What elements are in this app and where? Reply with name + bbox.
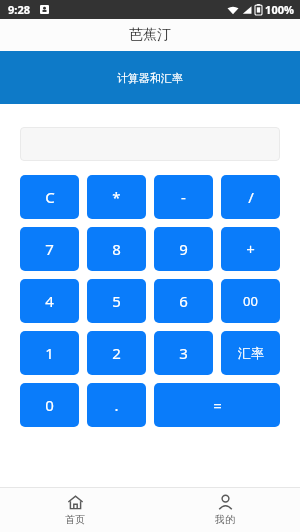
staticText: + [246, 239, 255, 259]
staticText: 2 [112, 343, 121, 363]
button[interactable]: 1 [20, 331, 79, 375]
button[interactable]: * [87, 175, 146, 219]
staticText: 3 [179, 343, 188, 363]
button[interactable]: 7 [20, 227, 79, 271]
button[interactable]: . [87, 383, 146, 427]
button[interactable]: / [221, 175, 280, 219]
staticText: 100% [265, 2, 294, 17]
staticText: . [114, 395, 119, 415]
button[interactable]: = [154, 383, 280, 427]
staticText: 9:28 [8, 2, 30, 17]
staticText: 我的 [215, 513, 235, 526]
button[interactable]: 2 [87, 331, 146, 375]
staticText: 7 [45, 239, 54, 259]
staticText: 计算器和汇率 [117, 71, 183, 85]
button[interactable]: 5 [87, 279, 146, 323]
button[interactable]: 8 [87, 227, 146, 271]
staticText: 5 [112, 291, 121, 311]
button[interactable]: 首页 [0, 488, 150, 532]
button[interactable]: C [20, 175, 79, 219]
button[interactable]: 6 [154, 279, 213, 323]
button[interactable]: 汇率 [221, 331, 280, 375]
button[interactable]: 我的 [150, 488, 300, 532]
button[interactable]: 00 [221, 279, 280, 323]
staticText: 00 [243, 292, 258, 310]
staticText: * [112, 187, 121, 207]
button[interactable]: 4 [20, 279, 79, 323]
staticText: 6 [179, 291, 188, 311]
staticText: 0 [45, 395, 54, 415]
staticText: 1 [45, 343, 54, 363]
staticText: 4 [45, 291, 54, 311]
staticText: C [45, 187, 55, 207]
button[interactable]: 0 [20, 383, 79, 427]
staticText: - [181, 187, 186, 207]
button[interactable]: 3 [154, 331, 213, 375]
staticText: = [213, 395, 222, 415]
staticText: 9 [179, 239, 188, 259]
button[interactable]: + [221, 227, 280, 271]
button[interactable]: 9 [154, 227, 213, 271]
button[interactable]: 计算器和汇率 [0, 51, 300, 104]
staticText: 8 [112, 239, 121, 259]
button[interactable]: - [154, 175, 213, 219]
staticText: 汇率 [238, 345, 264, 361]
staticText: / [248, 187, 254, 207]
staticText: 芭蕉汀 [129, 26, 171, 44]
staticText: 首页 [65, 513, 85, 526]
button[interactable] [20, 127, 280, 161]
